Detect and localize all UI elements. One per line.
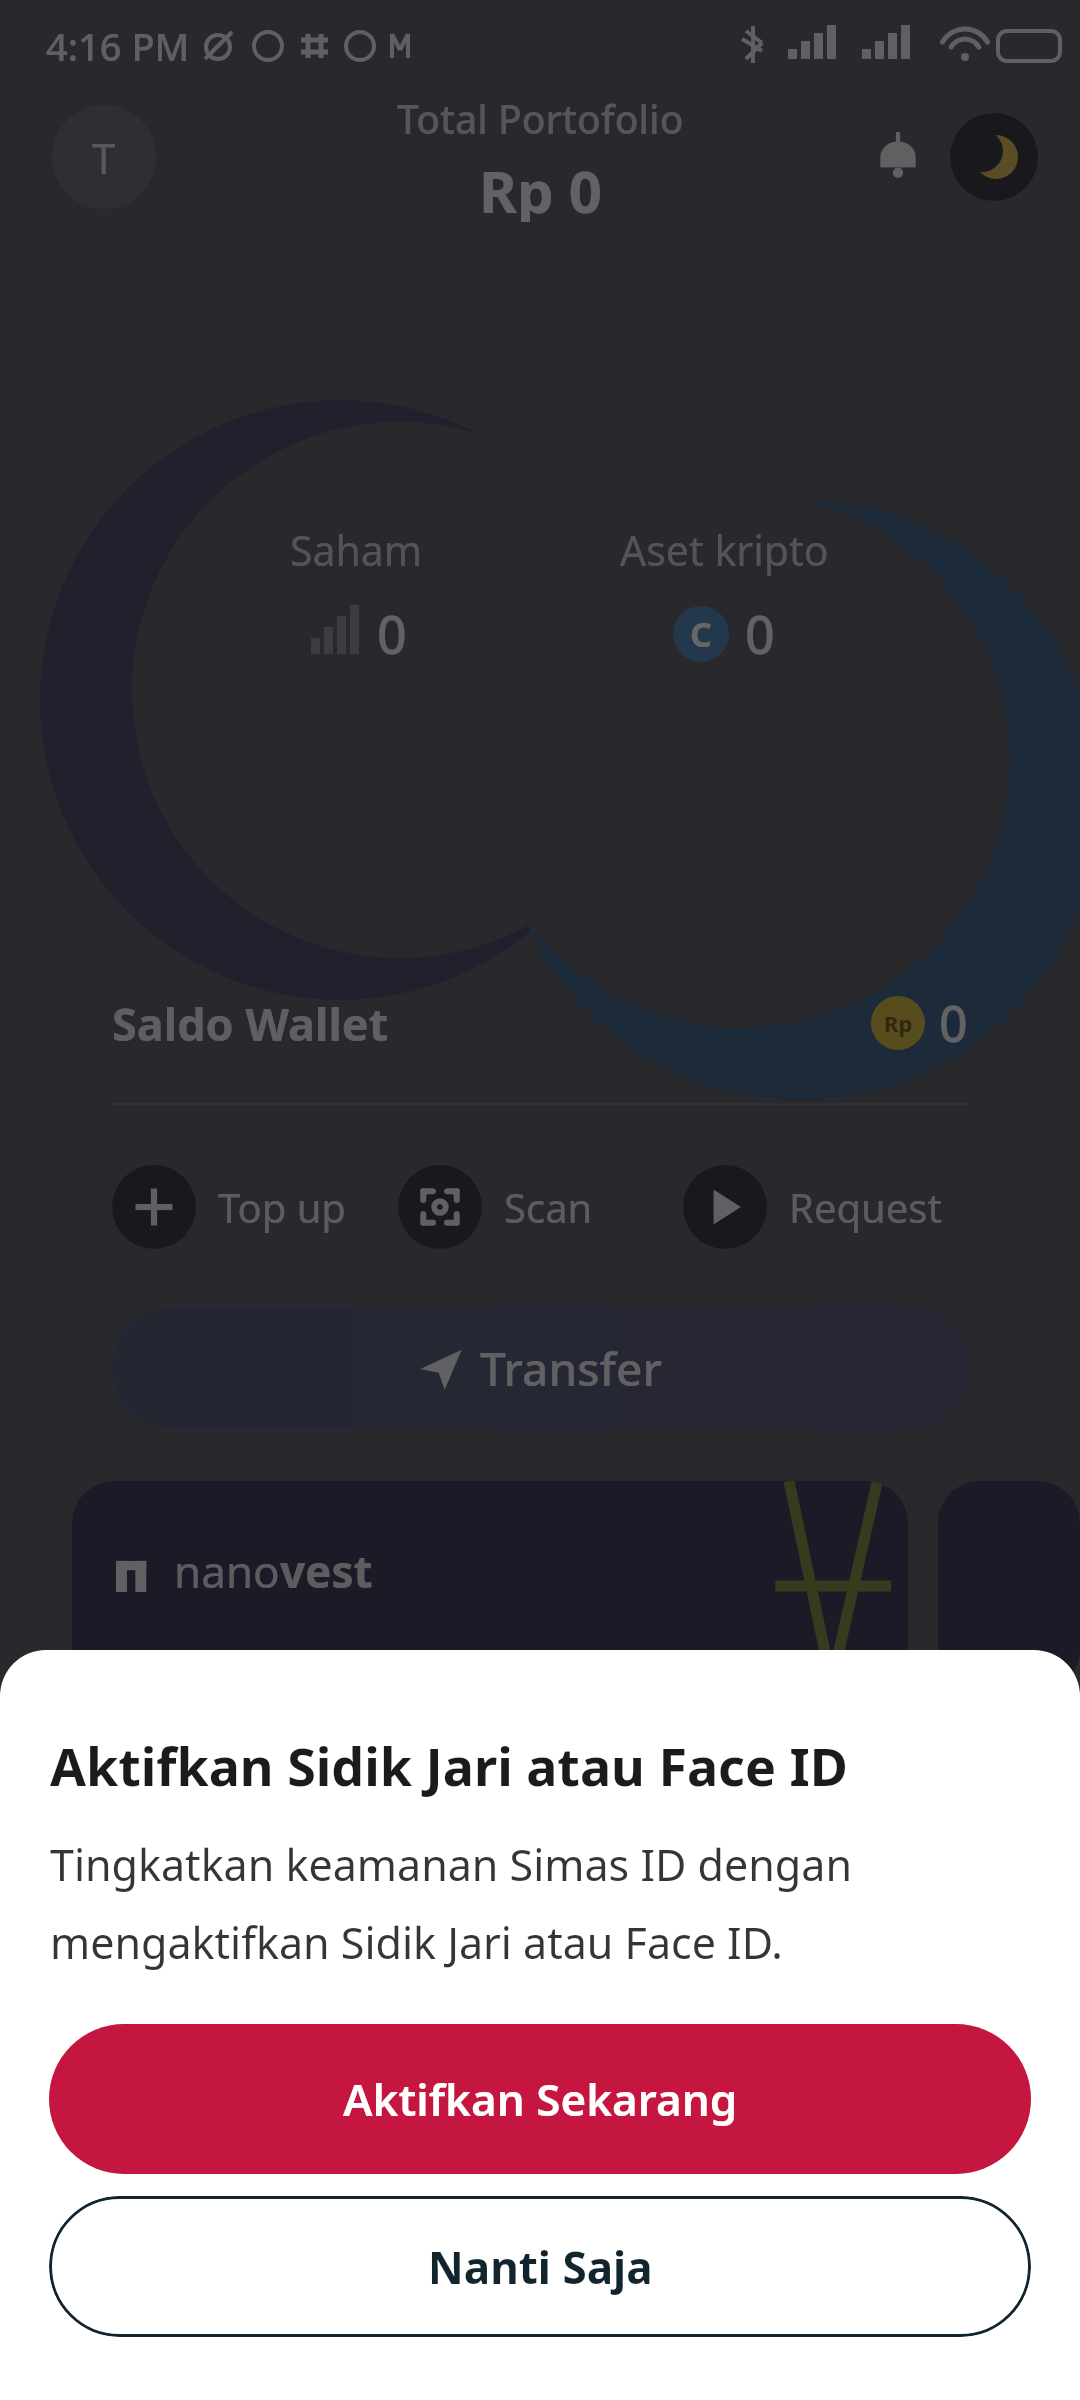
button[interactable]: Transfer [112,1307,968,1429]
staticText: Rp [884,1008,913,1038]
staticText: Aktifkan Sekarang [343,2069,738,2129]
staticText: 0 [377,598,407,669]
button[interactable]: Dark mode [950,113,1038,201]
staticText: nano [174,1541,280,1601]
button[interactable]: Aktifkan Sekarang [49,2024,1031,2174]
staticText: Scan [504,1180,593,1234]
button[interactable]: Nanti Saja [49,2196,1031,2337]
staticText: Transfer [480,1337,662,1400]
staticText: Aset kripto [620,522,829,578]
staticText: vest [280,1541,373,1601]
staticText: Saldo Wallet [112,993,389,1054]
staticText: 4:16 PM [46,20,190,72]
button[interactable]: Request [683,1165,968,1249]
staticText: Rp 0 [479,151,602,222]
staticText: Request [789,1180,942,1234]
button[interactable]: Top up [112,1165,398,1249]
staticText: C [690,611,712,657]
button[interactable]: nano [72,1481,908,1691]
staticText: T [92,129,116,186]
staticText: Nanti Saja [428,2237,653,2297]
staticText: Tingkatkan keamanan Simas ID dengan meng… [50,1835,1030,1972]
button[interactable]: Notifications [854,113,942,201]
staticText: Total Portofolio [397,92,684,145]
staticText: 0 [745,598,775,669]
staticText: Aktifkan Sidik Jari atau Face ID [50,1730,848,1801]
button[interactable]: Profile [52,105,156,209]
staticText: 0 [939,989,968,1057]
button[interactable]: Scan [398,1165,683,1249]
staticText: Saham [290,522,423,578]
staticText: Top up [218,1180,346,1234]
